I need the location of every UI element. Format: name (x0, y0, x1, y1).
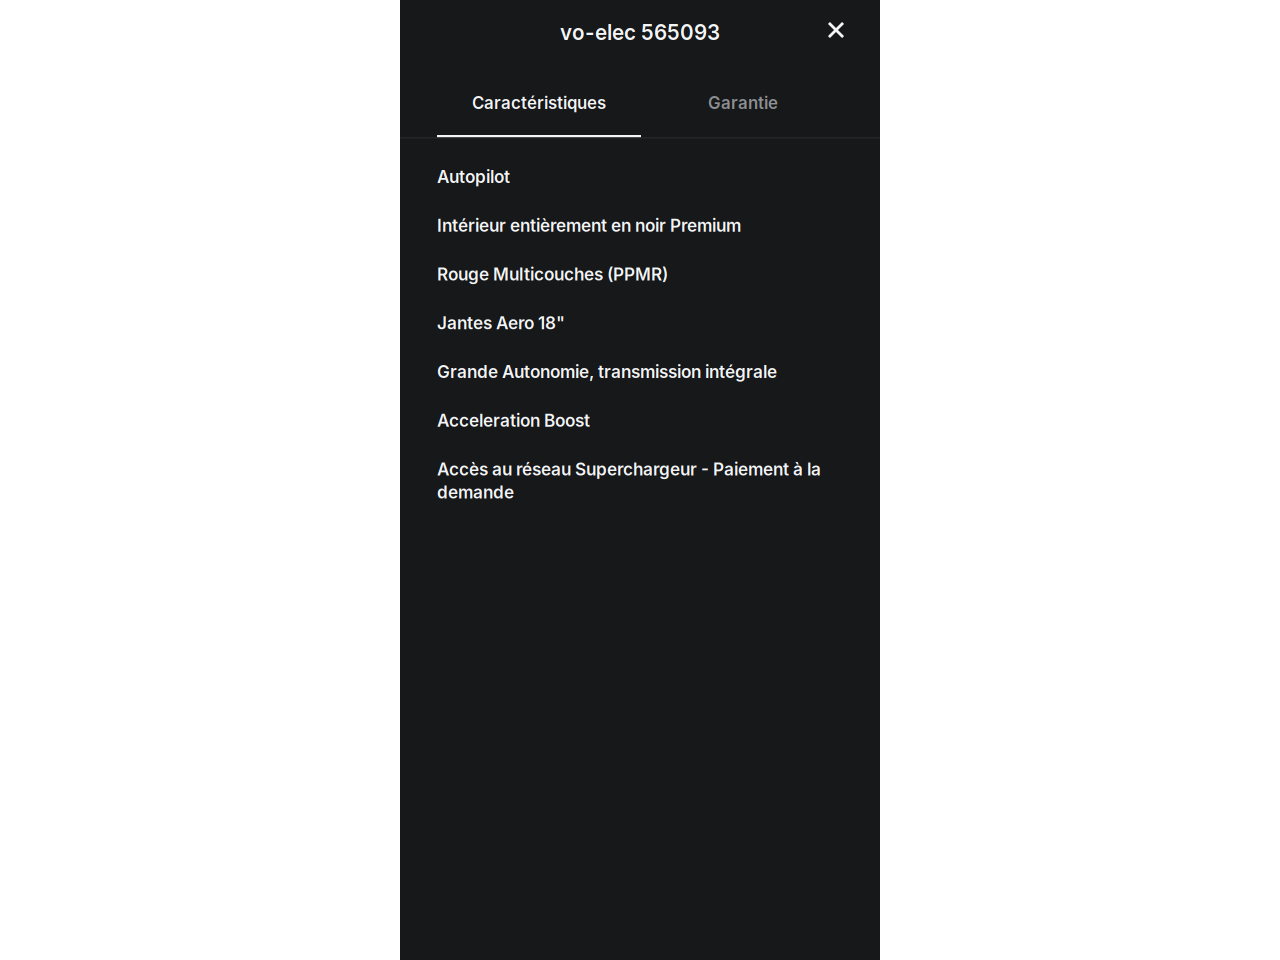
staticText: Jantes Aero 18" (437, 313, 565, 333)
button[interactable]: Caractéristiques (437, 65, 641, 137)
button[interactable]: Close (812, 6, 860, 54)
button[interactable]: Garantie (641, 65, 845, 137)
staticText: Intérieur entièrement en noir Premium (437, 215, 741, 236)
staticText: Garantie (708, 93, 778, 113)
staticText: Acceleration Boost (437, 410, 590, 431)
staticText: Grande Autonomie, transmission intégrale (437, 361, 777, 382)
staticText: Rouge Multicouches (PPMR) (437, 264, 668, 285)
staticText: vo-elec 565093 (560, 20, 720, 45)
staticText: Caractéristiques (472, 93, 606, 113)
staticText: Accès au réseau Superchargeur - Paiement… (437, 459, 821, 503)
staticText: Autopilot (437, 166, 510, 187)
